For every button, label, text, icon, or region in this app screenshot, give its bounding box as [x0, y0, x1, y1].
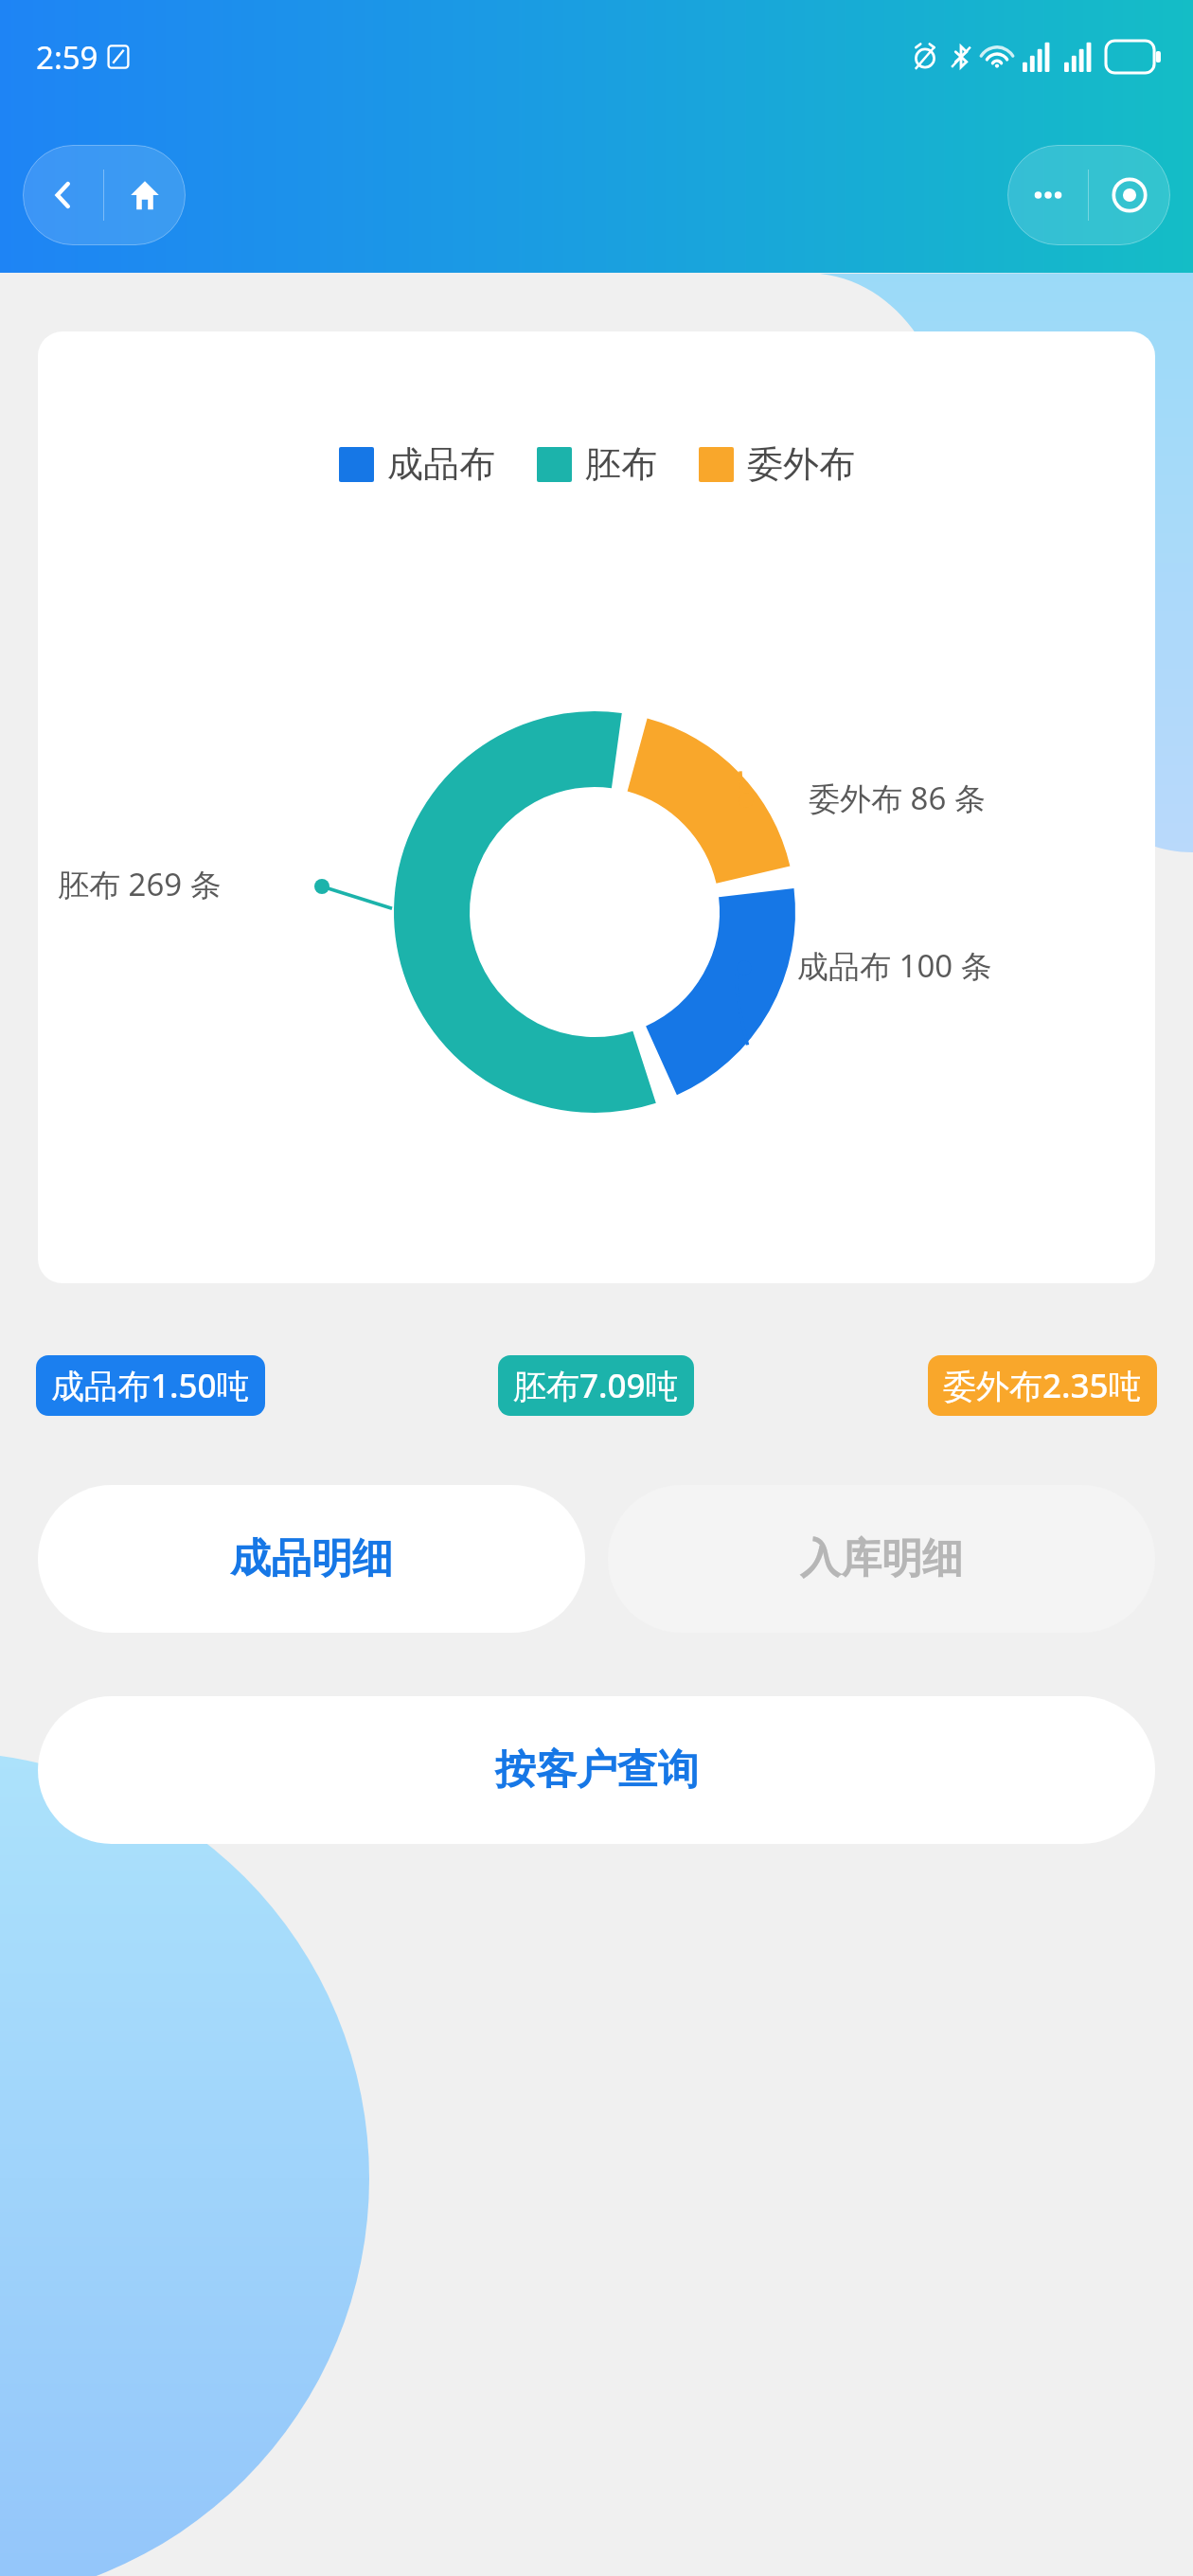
staticText: 按客户查询	[495, 1744, 699, 1796]
staticText: 委外布2.35吨	[943, 1363, 1142, 1408]
staticText: 2:59	[36, 36, 98, 79]
button[interactable]: More options	[1007, 145, 1088, 245]
staticText: 胚布 269 条	[58, 863, 222, 905]
button[interactable]: 成品布1.50吨	[36, 1355, 265, 1416]
staticText: 胚布	[585, 441, 657, 487]
button[interactable]: 胚布7.09吨	[498, 1355, 694, 1416]
button[interactable]: 入库明细	[608, 1485, 1155, 1633]
staticText: 成品布	[387, 441, 495, 487]
staticText: 成品布 100 条	[797, 944, 992, 987]
staticText: 成品明细	[230, 1533, 393, 1584]
button[interactable]: 委外布2.35吨	[928, 1355, 1157, 1416]
staticText: 成品布1.50吨	[51, 1363, 250, 1408]
button[interactable]: 按客户查询	[38, 1696, 1155, 1844]
button[interactable]: Close	[1089, 145, 1170, 245]
button[interactable]: 成品明细	[38, 1485, 585, 1633]
button[interactable]: Back	[23, 145, 103, 245]
staticText: 委外布	[747, 441, 855, 487]
button[interactable]: Home	[104, 145, 186, 245]
staticText: 入库明细	[800, 1533, 963, 1584]
staticText: 委外布 86 条	[809, 777, 986, 819]
staticText: 胚布7.09吨	[513, 1363, 679, 1408]
